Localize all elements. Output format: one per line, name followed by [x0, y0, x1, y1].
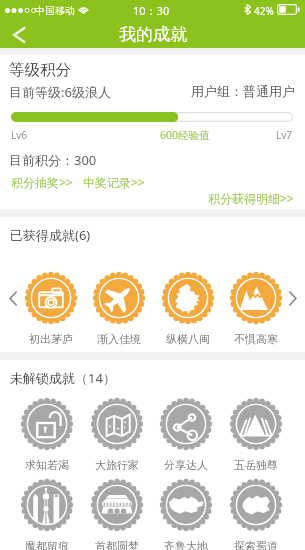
- button[interactable]: 不惧高寒: [226, 272, 286, 346]
- button[interactable]: 大旅行家: [87, 398, 147, 472]
- staticText: Lv6: [11, 128, 28, 142]
- staticText: 五岳独尊: [234, 458, 278, 472]
- staticText: 中奖记录>>: [83, 174, 145, 190]
- staticText: 我的成就: [119, 24, 187, 45]
- staticText: 42%: [254, 4, 274, 18]
- staticText: 等级积分: [9, 60, 71, 80]
- button[interactable]: 积分获得明细>>: [208, 190, 294, 206]
- staticText: 目前积分：300: [9, 151, 97, 169]
- button[interactable]: 齐鲁大地: [156, 479, 216, 550]
- staticText: 渐入佳境: [97, 332, 141, 346]
- staticText: 齐鲁大地: [164, 539, 208, 550]
- staticText: 大旅行家: [95, 458, 139, 472]
- staticText: 初出茅庐: [29, 332, 73, 346]
- button[interactable]: 渐入佳境: [89, 272, 149, 346]
- staticText: 纵横八闽: [166, 332, 210, 346]
- staticText: 分享达人: [164, 458, 208, 472]
- staticText: 求知若渴: [25, 458, 69, 472]
- staticText: 未解锁成就（14）: [10, 369, 116, 387]
- staticText: 积分获得明细>>: [208, 190, 294, 206]
- staticText: 10：30: [133, 3, 170, 18]
- button[interactable]: 分享达人: [156, 398, 216, 472]
- staticText: 魔都留痕: [25, 539, 69, 550]
- staticText: 不惧高寒: [234, 332, 278, 346]
- staticText: Lv7: [276, 128, 293, 142]
- button[interactable]: 求知若渴: [17, 398, 77, 472]
- staticText: 用户组：普通用户: [191, 83, 295, 99]
- button[interactable]: 上一页: [2, 285, 24, 311]
- staticText: 已获得成就(6): [10, 226, 91, 244]
- button[interactable]: 初出茅庐: [21, 272, 81, 346]
- button[interactable]: 纵横八闽: [158, 272, 218, 346]
- button[interactable]: 积分抽奖>>: [11, 174, 73, 190]
- staticText: 积分抽奖>>: [11, 174, 73, 190]
- button[interactable]: 探索蜀道: [226, 479, 286, 550]
- button[interactable]: 首都圆梦: [87, 479, 147, 550]
- staticText: 目前等级:6级浪人: [9, 83, 111, 101]
- button[interactable]: 返回: [0, 22, 37, 48]
- staticText: 探索蜀道: [234, 539, 278, 550]
- staticText: 首都圆梦: [95, 539, 139, 550]
- button[interactable]: 魔都留痕: [17, 479, 77, 550]
- button[interactable]: 中奖记录>>: [83, 174, 145, 190]
- staticText: 中国移动: [35, 4, 75, 17]
- staticText: 600经验值: [160, 128, 210, 142]
- button[interactable]: 五岳独尊: [226, 398, 286, 472]
- button[interactable]: 下一页: [281, 285, 303, 311]
